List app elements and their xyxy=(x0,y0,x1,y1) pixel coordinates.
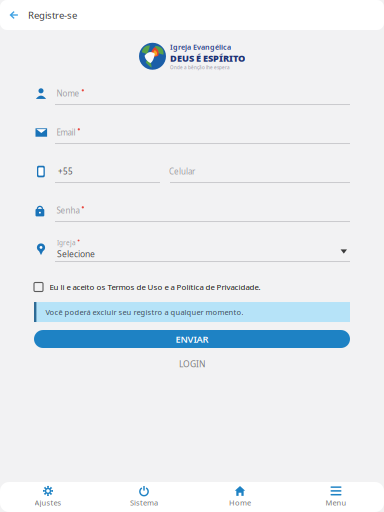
staticText: Senha xyxy=(56,205,79,216)
staticText: Celular xyxy=(169,166,195,177)
button[interactable]: LOGIN xyxy=(34,358,350,370)
staticText: Home xyxy=(229,497,251,508)
button[interactable]: Back xyxy=(0,0,28,30)
staticText: DEUS É ESPÍRITO xyxy=(170,52,245,64)
staticText: Nome xyxy=(56,88,79,99)
staticText: Menu xyxy=(325,497,346,508)
staticText: Eu li e aceito os Termos de Uso e a Polí… xyxy=(49,282,260,292)
staticText: Registre-se xyxy=(28,8,77,22)
staticText: LOGIN xyxy=(179,358,205,370)
staticText: Selecione xyxy=(57,248,95,260)
staticText: ENVIAR xyxy=(175,333,208,345)
button[interactable]: Ajustes xyxy=(0,482,96,512)
button[interactable]: Home xyxy=(192,482,288,512)
staticText: Igreja Evangélica xyxy=(170,42,231,52)
button[interactable]: Eu li e aceito os Termos de Uso e a Polí… xyxy=(34,281,350,293)
staticText: Ajustes xyxy=(34,497,61,508)
staticText: Você poderá excluir seu registro a qualq… xyxy=(45,307,243,317)
staticText: +55 xyxy=(58,166,73,177)
button[interactable]: ENVIAR xyxy=(34,330,350,348)
button[interactable]: Sistema xyxy=(96,482,192,512)
staticText: Onde a bênção lhe espera xyxy=(170,64,230,70)
staticText: Email xyxy=(56,127,75,138)
staticText: Sistema xyxy=(130,497,158,508)
staticText: Igreja xyxy=(57,238,76,247)
button[interactable]: Menu xyxy=(288,482,384,512)
